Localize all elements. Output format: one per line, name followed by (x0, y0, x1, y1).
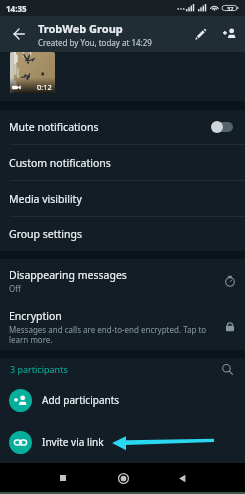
button[interactable]: Media visibility (0, 181, 245, 216)
staticText: 3 participants (10, 363, 68, 375)
staticText: Media visibility (9, 192, 82, 206)
staticText: Off (9, 283, 21, 294)
staticText: Invite via link (42, 435, 104, 449)
button[interactable]: Disappearing messages (0, 259, 245, 303)
button[interactable]: Add participant (215, 16, 245, 52)
button[interactable]: Custom notifications (0, 145, 245, 180)
button[interactable]: Video 0:12 (10, 52, 55, 93)
button[interactable]: Back (0, 16, 38, 52)
staticText: Created by You, today at 14:29 (38, 37, 152, 48)
staticText: Custom notifications (9, 156, 111, 170)
staticText: Encryption (9, 309, 62, 323)
staticText: Group settings (9, 227, 83, 241)
button[interactable]: Home (112, 467, 134, 489)
button[interactable]: Mute notifications (0, 110, 245, 144)
staticText: Messages and calls are end-to-end encryp… (9, 324, 220, 345)
button[interactable]: Add participants (0, 379, 245, 421)
staticText: Disappearing messages (9, 268, 127, 282)
button[interactable]: Encryption (0, 303, 245, 350)
staticText: 37 (227, 5, 234, 12)
staticText: 0:12 (37, 82, 52, 92)
button[interactable]: Invite via link (0, 421, 245, 463)
staticText: 14:35 (6, 3, 27, 14)
button[interactable]: Edit (185, 16, 215, 52)
button[interactable]: Group settings (0, 217, 245, 251)
staticText: TrobWeb Group (38, 21, 123, 36)
staticText: Add participants (42, 393, 120, 407)
staticText: Mute notifications (9, 120, 99, 134)
button[interactable]: Recent apps (52, 467, 74, 489)
button[interactable]: Search participants (217, 359, 237, 379)
button[interactable]: Back (171, 467, 193, 489)
